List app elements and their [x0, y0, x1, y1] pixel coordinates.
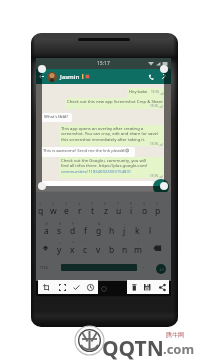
staticText: +	[124, 221, 126, 226]
staticText: z	[104, 205, 108, 217]
button[interactable]: Delete	[128, 280, 140, 294]
staticText: d	[70, 225, 76, 237]
button[interactable]: o	[138, 205, 151, 217]
button[interactable]: Home	[98, 283, 110, 295]
button[interactable]: h	[105, 225, 118, 237]
other: Undo	[87, 284, 94, 291]
button[interactable]: v	[92, 244, 105, 256]
staticText: 15:16	[121, 149, 130, 153]
staticText: w	[50, 205, 57, 217]
button[interactable]: n	[118, 244, 131, 256]
other: Share	[159, 284, 166, 291]
staticText: 15:16	[151, 90, 160, 94]
staticText: 腾牛网	[166, 331, 184, 339]
button[interactable]: Call	[144, 69, 157, 84]
button[interactable]: Enter	[156, 264, 166, 274]
button[interactable]: Save	[141, 280, 153, 294]
button[interactable]: c	[79, 244, 92, 256]
button[interactable]: f	[79, 225, 92, 237]
button[interactable]: Check out this new app Screenshot Crop &…	[65, 98, 164, 109]
staticText: =	[59, 240, 61, 245]
staticText: f	[84, 225, 87, 237]
staticText: Hey babe	[129, 89, 148, 95]
button[interactable]: This app opens an overlay after creating…	[59, 125, 164, 146]
button[interactable]: Share	[156, 280, 168, 294]
button[interactable]: Hey babe	[127, 88, 165, 98]
staticText: k	[135, 225, 140, 237]
button[interactable]: Record voice message	[153, 179, 169, 195]
button[interactable]: u	[112, 205, 125, 217]
button[interactable]: Done	[70, 280, 82, 294]
staticText: o	[142, 205, 148, 217]
button[interactable]: Attach	[157, 69, 170, 84]
staticText: .com	[163, 340, 195, 358]
staticText: b	[109, 244, 115, 256]
staticText: ?123	[40, 265, 48, 270]
button[interactable]: What's that?	[42, 113, 72, 122]
button[interactable]: This is awesome! Send me the link please…	[41, 147, 135, 157]
staticText: p	[155, 205, 161, 217]
button[interactable]: Expand	[56, 280, 68, 294]
button[interactable]: Crop	[40, 280, 52, 294]
staticText: 4	[78, 201, 80, 206]
button[interactable]: g	[92, 225, 105, 237]
button[interactable]: e	[60, 205, 73, 217]
button[interactable]: z	[99, 205, 112, 217]
staticText: 3	[65, 201, 67, 206]
button[interactable]: b	[105, 244, 118, 256]
staticText: 7	[117, 201, 119, 206]
button[interactable]: k	[131, 225, 144, 237]
staticText: n	[122, 244, 128, 256]
staticText: 15:17	[97, 60, 110, 67]
button[interactable]: i	[125, 205, 138, 217]
staticText: .	[143, 263, 145, 270]
staticText: 15:16	[150, 104, 159, 108]
other: Done	[73, 284, 80, 291]
button[interactable]: q	[34, 205, 47, 217]
staticText: &	[98, 221, 101, 226]
button[interactable]: r	[73, 205, 86, 217]
button[interactable]: Check out the Google+ community, you wil…	[59, 157, 164, 178]
staticText: "	[85, 240, 87, 245]
button[interactable]: j	[118, 225, 131, 237]
staticText: !	[138, 240, 139, 245]
staticText: a	[44, 225, 49, 237]
staticText: 5	[91, 201, 93, 206]
staticText: s	[57, 225, 62, 237]
button[interactable]: Back	[36, 69, 47, 84]
staticText: i	[130, 205, 133, 217]
button[interactable]: x	[66, 244, 79, 256]
staticText: t	[91, 205, 95, 217]
button[interactable]: p	[151, 205, 164, 217]
staticText: 15:16	[150, 174, 159, 178]
button[interactable]: l	[144, 225, 157, 237]
staticText: e	[64, 205, 69, 217]
staticText: x	[70, 244, 75, 256]
staticText: g	[96, 225, 102, 237]
staticText: 6	[104, 201, 106, 206]
button[interactable]: y	[53, 244, 66, 256]
staticText: Jasmin	[60, 73, 80, 81]
button[interactable]: t	[86, 205, 99, 217]
button[interactable]: s	[53, 225, 66, 237]
staticText: QQTN	[102, 334, 164, 360]
staticText: h	[109, 225, 115, 237]
button[interactable]: d	[66, 225, 79, 237]
button[interactable]	[39, 181, 156, 191]
staticText: @	[45, 221, 49, 226]
staticText: ;	[125, 240, 126, 245]
button[interactable]: Undo	[84, 280, 96, 294]
staticText: this screenshot immediately after taking…	[61, 137, 146, 143]
other: Expand	[59, 284, 66, 291]
other: Crop	[43, 284, 50, 291]
button[interactable]: m	[131, 244, 144, 256]
staticText: 15:16	[58, 115, 67, 119]
staticText: r	[78, 205, 82, 217]
button[interactable]: w	[47, 205, 60, 217]
button[interactable]: a	[40, 225, 53, 237]
staticText: 9	[143, 201, 145, 206]
